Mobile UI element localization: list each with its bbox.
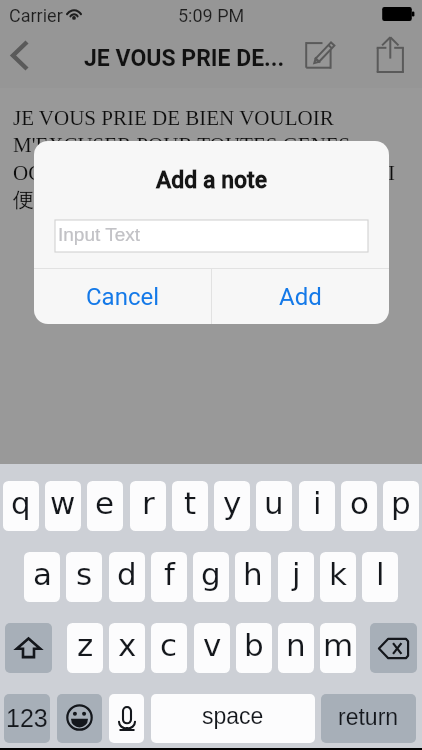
button[interactable]: Add: [212, 269, 389, 324]
staticText: c: [160, 627, 178, 663]
staticText: 123: [6, 704, 48, 732]
staticText: m: [323, 627, 354, 663]
button[interactable]: m: [320, 623, 356, 673]
button[interactable]: Compose: [296, 28, 344, 87]
button[interactable]: d: [109, 552, 145, 602]
staticText: return: [338, 704, 399, 730]
staticText: b: [244, 627, 264, 663]
button[interactable]: Input Text: [55, 220, 368, 252]
staticText: JE VOUS PRIE DE...: [84, 45, 285, 72]
staticText: Add: [279, 283, 322, 311]
button[interactable]: w: [45, 481, 81, 531]
button[interactable]: Shift: [5, 623, 52, 673]
button[interactable]: return: [321, 694, 416, 743]
staticText: x: [118, 627, 137, 663]
button[interactable]: Dictation: [109, 694, 144, 743]
button[interactable]: space: [151, 694, 315, 743]
staticText: t: [184, 485, 197, 521]
staticText: j: [292, 556, 301, 592]
button[interactable]: k: [320, 552, 356, 602]
button[interactable]: Share: [374, 28, 422, 87]
staticText: f: [164, 556, 175, 592]
staticText: o: [350, 485, 369, 521]
button[interactable]: Emoji keyboard: [57, 694, 102, 743]
button[interactable]: 123: [4, 694, 50, 743]
button[interactable]: n: [278, 623, 314, 673]
button[interactable]: a: [24, 552, 60, 602]
button[interactable]: h: [235, 552, 271, 602]
button[interactable]: x: [109, 623, 145, 673]
staticText: space: [202, 703, 264, 729]
staticText: Carrier: [9, 5, 63, 26]
staticText: y: [223, 485, 242, 521]
button[interactable]: z: [67, 623, 103, 673]
staticText: g: [201, 556, 221, 592]
button[interactable]: o: [341, 481, 377, 531]
button[interactable]: t: [172, 481, 208, 531]
staticText: Input Text: [58, 224, 141, 245]
button[interactable]: Backspace: [370, 623, 417, 673]
button[interactable]: v: [194, 623, 230, 673]
staticText: s: [76, 556, 93, 592]
button[interactable]: p: [383, 481, 419, 531]
button[interactable]: q: [3, 481, 39, 531]
button[interactable]: s: [66, 552, 102, 602]
staticText: h: [243, 556, 263, 592]
button[interactable]: u: [256, 481, 292, 531]
button[interactable]: Cancel: [34, 269, 211, 324]
button[interactable]: j: [278, 552, 314, 602]
staticText: q: [11, 485, 31, 521]
staticText: JE VOUS PRIE DE BIEN VOULOIR M'EXCUSER P…: [13, 106, 411, 213]
button[interactable]: l: [362, 552, 398, 602]
staticText: l: [376, 556, 385, 592]
button[interactable]: i: [299, 481, 335, 531]
staticText: z: [77, 627, 94, 663]
staticText: p: [391, 485, 411, 521]
button[interactable]: f: [151, 552, 187, 602]
staticText: e: [95, 485, 115, 521]
button[interactable]: b: [236, 623, 272, 673]
staticText: Cancel: [86, 283, 160, 311]
staticText: 5:09 PM: [178, 5, 245, 26]
button[interactable]: r: [130, 481, 166, 531]
staticText: Add a note: [156, 167, 268, 194]
staticText: i: [313, 485, 322, 521]
staticText: d: [117, 556, 137, 592]
staticText: v: [203, 627, 222, 663]
button[interactable]: c: [151, 623, 187, 673]
staticText: w: [50, 485, 76, 521]
staticText: k: [329, 556, 347, 592]
staticText: r: [142, 485, 155, 521]
staticText: a: [33, 556, 52, 592]
button[interactable]: e: [87, 481, 123, 531]
button[interactable]: Back: [0, 28, 50, 87]
button[interactable]: y: [214, 481, 250, 531]
button[interactable]: g: [193, 552, 229, 602]
staticText: u: [264, 485, 284, 521]
staticText: n: [286, 627, 306, 663]
